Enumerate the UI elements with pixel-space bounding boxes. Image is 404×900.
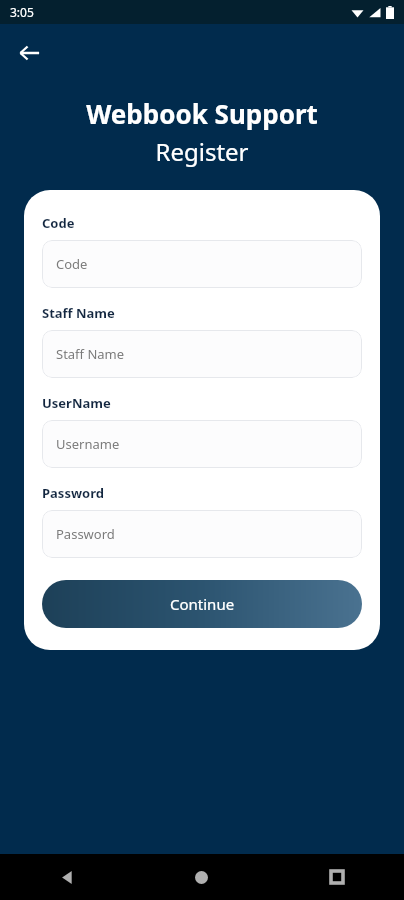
staticText: 3:05 [10, 4, 34, 20]
staticText: Password [56, 525, 115, 543]
staticText: Username [56, 435, 120, 453]
button[interactable]: Back [8, 31, 52, 75]
staticText: Continue [170, 594, 235, 614]
button[interactable]: Home [134, 854, 269, 900]
staticText: Staff Name [56, 345, 125, 363]
button[interactable]: Staff Name [42, 330, 362, 378]
staticText: Register [0, 135, 404, 168]
button[interactable]: Password [42, 510, 362, 558]
button[interactable]: Username [42, 420, 362, 468]
button[interactable]: Code [42, 240, 362, 288]
button[interactable]: Recent apps [269, 854, 404, 900]
button[interactable]: Continue [42, 580, 362, 628]
staticText: Code [42, 214, 75, 232]
button[interactable]: Back [0, 854, 134, 900]
staticText: Staff Name [42, 304, 115, 322]
staticText: UserName [42, 394, 111, 412]
staticText: Password [42, 484, 104, 502]
staticText: Code [56, 255, 88, 273]
staticText: Webbook Support [0, 96, 404, 131]
